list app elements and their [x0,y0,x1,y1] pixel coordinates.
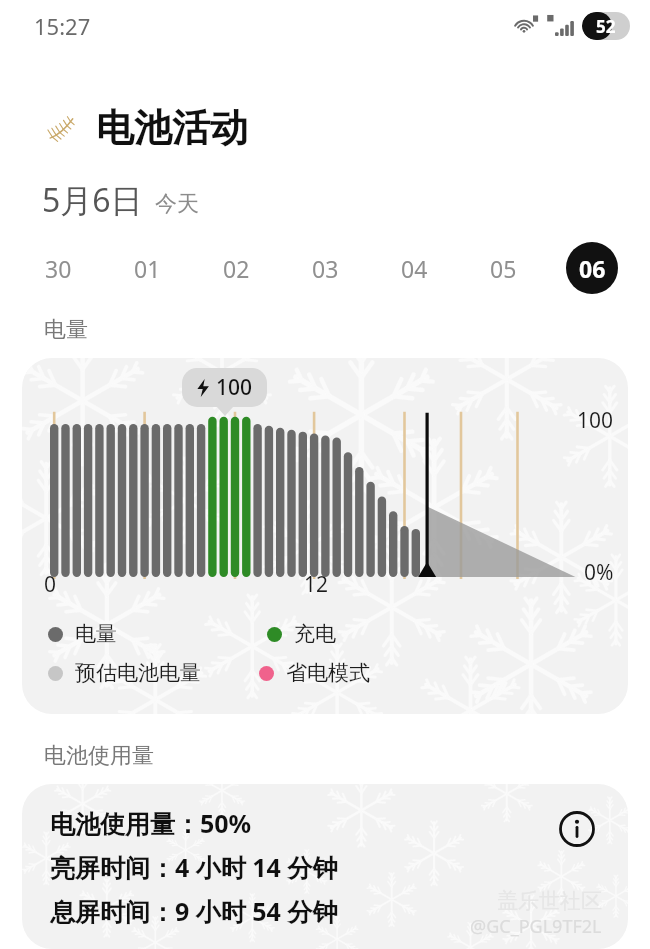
staticText: 52 [596,15,616,38]
button[interactable]: 电池使用量：50% [22,784,628,949]
button[interactable]: 02 [210,242,262,294]
button[interactable]: 30 [32,242,84,294]
staticText: 01 [134,253,161,284]
staticText: 05 [490,253,517,284]
staticText: 0% [584,558,614,587]
staticText: 30 [45,253,72,284]
staticText: 5月6日 [42,178,143,222]
staticText: 电池活动 [96,104,248,152]
staticText: 预估电池电量 [75,660,201,686]
button[interactable]: Info [558,810,596,848]
staticText: 息屏时间：9 小时 54 分钟 [50,894,338,928]
staticText: 电量 [44,316,88,344]
staticText: 100 [216,373,253,402]
staticText: 04 [401,253,428,284]
staticText: 今天 [155,190,199,218]
staticText: 盖乐世社区 [497,888,602,914]
button[interactable]: 04 [388,242,440,294]
staticText: 充电 [294,621,336,647]
staticText: 0 [44,570,57,599]
staticText: 06 [579,253,606,284]
staticText: @GC_PGL9TF2L [470,914,602,939]
staticText: 02 [223,253,250,284]
staticText: 电池使用量：50% [50,806,252,840]
staticText: 03 [312,253,339,284]
button[interactable]: 01 [121,242,173,294]
staticText: 亮屏时间：4 小时 14 分钟 [50,850,338,884]
button[interactable]: 05 [477,242,529,294]
staticText: 省电模式 [286,660,370,686]
button[interactable]: 06 [566,242,618,294]
staticText: 100 [577,406,614,435]
staticText: 电量 [75,621,117,647]
staticText: 12 [304,570,329,599]
staticText: 电池使用量 [44,742,154,770]
button[interactable]: 0 [22,358,628,714]
staticText: 15:27 [34,11,91,41]
button[interactable]: 03 [299,242,351,294]
